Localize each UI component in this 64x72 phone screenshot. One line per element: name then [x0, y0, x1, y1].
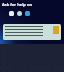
- button[interactable]: App three: [25, 11, 30, 16]
- staticText: Ask for help on: [2, 2, 33, 7]
- button[interactable]: [3, 24, 61, 40]
- button[interactable]: App one: [9, 11, 14, 16]
- button[interactable]: App two: [17, 11, 22, 16]
